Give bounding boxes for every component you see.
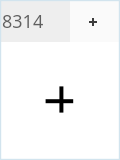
button[interactable]: 8314: [1, 1, 70, 42]
staticText: 8314: [2, 9, 44, 34]
button[interactable]: Add item: [41, 82, 77, 118]
button[interactable]: Add: [83, 12, 103, 32]
